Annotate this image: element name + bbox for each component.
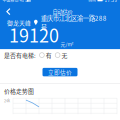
staticText: 自动估价 xyxy=(52,8,72,15)
staticText: 是否有电梯: xyxy=(4,51,36,59)
button[interactable]: 无 xyxy=(55,51,67,59)
staticText: 19120 xyxy=(9,22,59,48)
staticText: 重庆市江北区渝一路288号 xyxy=(41,13,107,32)
staticText: 24k xyxy=(4,98,10,103)
staticText: 价格走势图 xyxy=(4,87,34,95)
staticText: 中国移动 4G xyxy=(2,0,24,3)
staticText: 元/m² xyxy=(60,41,73,48)
staticText: 17:39 xyxy=(104,0,117,3)
staticText: 有 xyxy=(46,51,52,59)
staticText: 无 xyxy=(61,51,67,59)
staticText: 98% xyxy=(88,0,96,3)
staticText: 御龙天峰 xyxy=(7,18,31,27)
button[interactable]: 有 xyxy=(39,51,52,59)
staticText: 立即估价 xyxy=(48,68,72,76)
button[interactable]: Back xyxy=(2,5,15,18)
button[interactable]: 立即估价 xyxy=(42,68,77,76)
